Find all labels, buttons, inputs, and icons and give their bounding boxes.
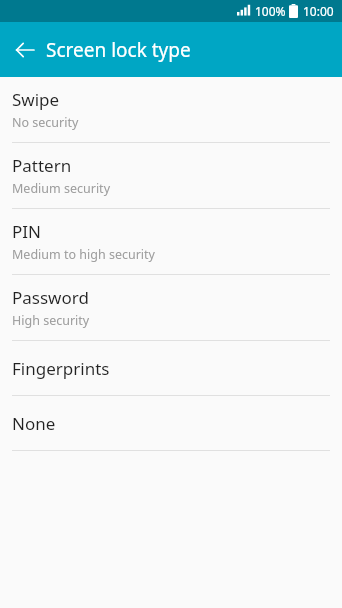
staticText: Medium security <box>12 180 111 197</box>
staticText: 10:00 <box>303 3 334 19</box>
button[interactable]: Password <box>0 275 342 340</box>
staticText: Screen lock type <box>46 37 191 63</box>
staticText: High security <box>12 312 90 329</box>
staticText: Pattern <box>12 154 72 177</box>
staticText: Password <box>12 286 89 309</box>
staticText: No security <box>12 114 79 131</box>
button[interactable]: None <box>0 396 342 450</box>
staticText: 100% <box>255 3 286 19</box>
button[interactable]: PIN <box>0 209 342 274</box>
button[interactable]: Fingerprints <box>0 341 342 395</box>
staticText: Fingerprints <box>12 357 110 380</box>
button[interactable]: Navigate up <box>6 31 44 69</box>
button[interactable]: Swipe <box>0 77 342 142</box>
staticText: Medium to high security <box>12 246 155 263</box>
staticText: None <box>12 412 56 435</box>
staticText: Swipe <box>12 88 60 111</box>
staticText: PIN <box>12 220 41 243</box>
button[interactable]: Pattern <box>0 143 342 208</box>
